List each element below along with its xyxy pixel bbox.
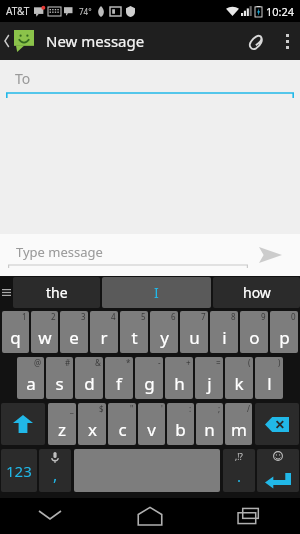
staticText: i	[222, 326, 227, 349]
staticText: k	[234, 372, 244, 395]
staticText: +	[186, 357, 191, 368]
staticText: u	[189, 326, 200, 349]
staticText: (	[248, 357, 251, 368]
button[interactable]: More options	[274, 22, 300, 60]
staticText: =	[216, 357, 221, 368]
staticText: the	[46, 283, 68, 302]
staticText: ,	[53, 464, 58, 486]
staticText: AT&T	[6, 4, 30, 18]
staticText: 1	[22, 311, 27, 322]
staticText: /	[247, 403, 250, 414]
staticText: 123	[6, 461, 32, 481]
button[interactable]: the	[13, 277, 100, 308]
button[interactable]: 5	[120, 311, 148, 353]
staticText: 6	[171, 311, 176, 322]
button[interactable]: Send	[248, 235, 292, 275]
button[interactable]: (	[225, 357, 253, 399]
staticText: d	[84, 372, 95, 395]
button[interactable]: Recent apps	[200, 498, 300, 534]
button[interactable]: *	[105, 357, 133, 399]
button[interactable]: To	[6, 69, 294, 98]
staticText: 74°	[79, 6, 92, 17]
button[interactable]: _	[48, 403, 76, 445]
staticText: 0	[291, 311, 296, 322]
button[interactable]: Period and punctuation	[223, 449, 255, 492]
staticText: r	[100, 326, 108, 349]
button[interactable]: @	[17, 357, 44, 399]
button[interactable]: /	[225, 403, 252, 445]
button[interactable]: Shift	[1, 403, 45, 445]
button[interactable]: Back	[0, 22, 40, 60]
staticText: t	[131, 326, 138, 349]
button[interactable]: '	[138, 403, 165, 445]
staticText: @	[34, 357, 42, 368]
button[interactable]: how	[213, 277, 300, 308]
staticText: 5	[141, 311, 146, 322]
staticText: 4	[111, 311, 116, 322]
button[interactable]: +	[165, 357, 193, 399]
staticText: 2	[51, 311, 56, 322]
button[interactable]: 123	[1, 449, 37, 492]
staticText: 7	[201, 311, 206, 322]
staticText: 3	[81, 311, 86, 322]
staticText: y	[160, 326, 169, 349]
staticText: )	[278, 357, 281, 368]
button[interactable]: Backspace	[255, 403, 299, 445]
button[interactable]: 6	[150, 311, 178, 353]
button[interactable]: Attach	[238, 22, 274, 60]
staticText: how	[243, 283, 271, 302]
staticText: 10:24	[266, 4, 295, 19]
staticText: "	[130, 403, 134, 414]
button[interactable]: 8	[210, 311, 238, 353]
staticText: o	[249, 326, 260, 349]
button[interactable]: Hide keyboard	[0, 498, 100, 534]
staticText: I	[154, 283, 159, 302]
staticText: '	[161, 403, 163, 414]
staticText: s	[55, 372, 64, 395]
button[interactable]: I	[102, 277, 211, 308]
button[interactable]: $	[78, 403, 106, 445]
staticText: x	[88, 418, 97, 441]
staticText: b	[175, 418, 186, 441]
button[interactable]: ;	[196, 403, 223, 445]
button[interactable]: Comma and voice input	[39, 449, 71, 492]
staticText: To	[15, 69, 31, 88]
staticText: _	[70, 403, 74, 414]
button[interactable]: =	[195, 357, 223, 399]
staticText: *	[126, 357, 131, 368]
staticText: #	[65, 357, 71, 368]
button[interactable]: Type message	[8, 243, 248, 268]
staticText: -	[158, 357, 161, 368]
staticText: 8	[231, 311, 236, 322]
button[interactable]: 9	[240, 311, 268, 353]
staticText: p	[279, 326, 290, 349]
button[interactable]: Keyboard settings	[0, 276, 13, 309]
staticText: ;	[218, 403, 221, 414]
button[interactable]: -	[135, 357, 163, 399]
button[interactable]: )	[255, 357, 283, 399]
button[interactable]: Home	[100, 498, 200, 534]
button[interactable]: 7	[180, 311, 208, 353]
staticText: v	[147, 418, 156, 441]
staticText: h	[174, 372, 185, 395]
button[interactable]: "	[108, 403, 136, 445]
staticText: n	[204, 418, 215, 441]
button[interactable]: 0	[270, 311, 298, 353]
staticText: $	[99, 403, 104, 414]
button[interactable]: &	[75, 357, 103, 399]
staticText: z	[58, 418, 66, 441]
staticText: j	[207, 372, 212, 395]
staticText: q	[10, 326, 21, 349]
button[interactable]: :	[167, 403, 194, 445]
button[interactable]: 4	[90, 311, 118, 353]
button[interactable]: Enter	[257, 449, 299, 492]
button[interactable]: 1	[2, 311, 29, 353]
button[interactable]: 3	[60, 311, 88, 353]
staticText: ,!?	[235, 451, 243, 462]
staticText: &	[95, 357, 101, 368]
staticText: .	[237, 466, 242, 486]
button[interactable]: #	[46, 357, 73, 399]
staticText: l	[267, 372, 272, 395]
button[interactable]: 2	[31, 311, 58, 353]
